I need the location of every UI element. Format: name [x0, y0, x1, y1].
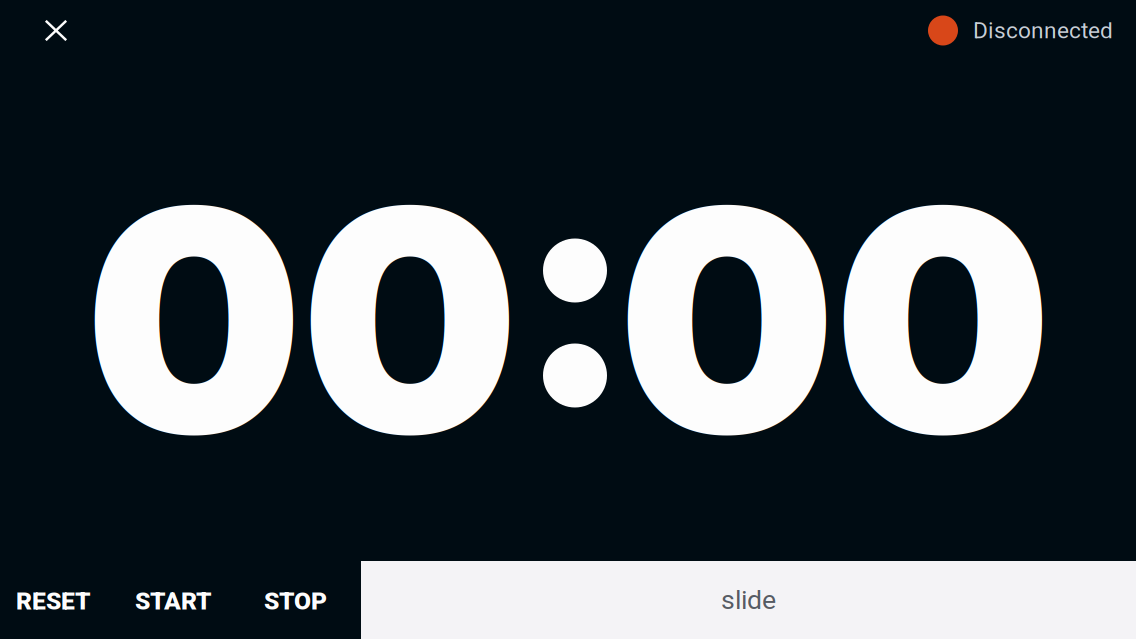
staticText: RESET [16, 586, 91, 615]
button[interactable]: Close [34, 8, 78, 52]
staticText: STOP [264, 586, 327, 615]
button[interactable]: START [135, 561, 264, 639]
staticText: 00:00 [86, 113, 1051, 517]
staticText: slide [721, 584, 776, 616]
staticText: START [135, 586, 212, 615]
staticText: Disconnected [973, 17, 1113, 44]
button[interactable]: STOP [264, 561, 362, 639]
button[interactable]: RESET [16, 561, 135, 639]
button[interactable]: slide [361, 561, 1136, 639]
